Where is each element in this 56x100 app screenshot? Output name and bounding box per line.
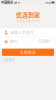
button[interactable]: 忘记密码? — [37, 39, 51, 44]
staticText: 忘记密码? — [37, 39, 51, 44]
staticText: 请输入手机号 — [10, 30, 34, 35]
staticText: 优选到家 — [16, 10, 40, 19]
button[interactable]: 立即登录 — [2, 49, 54, 56]
button[interactable]: 注册账号 — [0, 58, 17, 62]
staticText: 14:06 — [45, 1, 50, 4]
staticText: 优 质 生 活 服 务 平 台 — [16, 19, 39, 23]
staticText: 注册账号 — [2, 58, 14, 62]
staticText: 4G — [18, 1, 21, 4]
staticText: 立即登录 — [20, 50, 36, 55]
staticText: 密码 — [10, 39, 18, 44]
staticText: 中国移动 — [1, 0, 13, 5]
